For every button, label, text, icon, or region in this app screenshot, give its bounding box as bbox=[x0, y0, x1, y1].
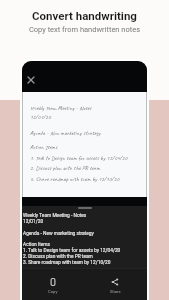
staticText: 3. Share roadmap with team by 12/10/20 bbox=[30, 175, 120, 183]
staticText: 12/01/20 bbox=[30, 113, 51, 121]
staticText: 12/01/20 bbox=[23, 219, 44, 225]
staticText: Action Items bbox=[23, 242, 51, 248]
staticText: Action Items bbox=[30, 143, 58, 151]
button[interactable]: Share bbox=[95, 278, 135, 294]
staticText: Agenda - New marketing strategy bbox=[23, 231, 94, 237]
staticText: 1. Talk to Design team for assets by 12/… bbox=[23, 248, 121, 254]
staticText: 2. Discuss plan with the PR team bbox=[30, 164, 100, 172]
staticText: Convert handwriting bbox=[0, 9, 169, 22]
staticText: Copy bbox=[48, 289, 58, 294]
button[interactable]: Copy bbox=[33, 278, 73, 294]
staticText: Share bbox=[110, 289, 121, 294]
staticText: 1. Talk to Design team for assets by 12/… bbox=[30, 154, 128, 162]
button[interactable]: Close bbox=[25, 74, 37, 86]
staticText: Weekly Team Meeting - Notes bbox=[23, 213, 87, 219]
staticText: 2. Discuss plan with the PR team bbox=[23, 254, 93, 260]
staticText: 3. Share roadmap with team by 12/10/20 bbox=[23, 260, 111, 266]
staticText: Weekly Team Meeting - Notes bbox=[30, 104, 92, 112]
staticText: Copy text from handwritten notes bbox=[0, 25, 169, 34]
staticText: Agenda - New marketing strategy bbox=[30, 129, 101, 137]
